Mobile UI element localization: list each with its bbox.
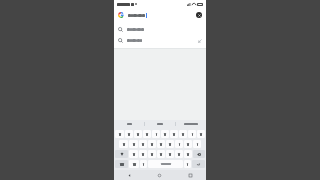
button[interactable] [176, 120, 206, 128]
button[interactable] [175, 140, 183, 148]
button[interactable] [161, 130, 169, 138]
button[interactable] [166, 140, 174, 148]
button[interactable]: Back [114, 170, 144, 180]
button[interactable]: Insert suggestion [114, 35, 206, 46]
button[interactable]: Recent apps [175, 170, 206, 180]
button[interactable] [134, 130, 142, 138]
button[interactable] [125, 130, 133, 138]
button[interactable] [175, 150, 183, 158]
button[interactable]: Home [144, 170, 175, 180]
button[interactable] [145, 120, 175, 128]
button[interactable] [166, 150, 174, 158]
button[interactable] [114, 120, 144, 128]
button[interactable] [114, 24, 206, 35]
button[interactable] [184, 150, 192, 158]
button[interactable] [139, 140, 147, 148]
button[interactable] [139, 150, 147, 158]
other: Insert suggestion [198, 39, 202, 43]
button[interactable] [115, 130, 124, 138]
button[interactable]: Space [148, 160, 183, 168]
button[interactable] [184, 160, 191, 168]
button[interactable] [143, 130, 151, 138]
button[interactable]: Clear search [114, 8, 206, 22]
button[interactable] [184, 140, 192, 148]
button[interactable]: Enter [192, 160, 205, 168]
button[interactable] [170, 130, 178, 138]
button[interactable] [157, 140, 165, 148]
button[interactable] [140, 160, 147, 168]
button[interactable] [179, 130, 187, 138]
button[interactable]: Shift [115, 150, 128, 158]
button[interactable] [129, 160, 139, 168]
button[interactable] [148, 140, 156, 148]
button[interactable] [193, 140, 201, 148]
button[interactable]: Symbols [115, 160, 128, 168]
button[interactable]: Clear search [196, 12, 202, 18]
button[interactable] [129, 150, 138, 158]
button[interactable] [148, 150, 156, 158]
button[interactable] [119, 140, 128, 148]
button[interactable] [188, 130, 196, 138]
button[interactable]: Backspace [193, 150, 205, 158]
button[interactable] [152, 130, 160, 138]
button[interactable] [197, 130, 205, 138]
button[interactable] [157, 150, 165, 158]
button[interactable] [129, 140, 138, 148]
